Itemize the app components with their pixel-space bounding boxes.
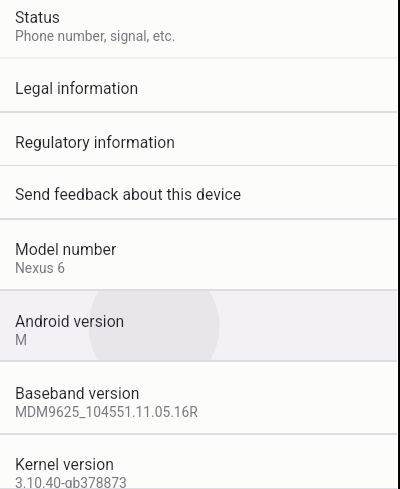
staticText: Model number — [15, 240, 117, 258]
staticText: 3.10.40-gb378873 — [15, 475, 127, 489]
button[interactable]: Legal information — [0, 59, 400, 113]
button[interactable]: Android version — [0, 291, 400, 362]
staticText: Regulatory information — [15, 133, 175, 151]
staticText: Nexus 6 — [15, 260, 65, 276]
staticText: Send feedback about this device — [15, 185, 242, 203]
staticText: Legal information — [15, 79, 139, 97]
button[interactable]: Regulatory information — [0, 113, 400, 167]
button[interactable]: Model number — [0, 220, 400, 291]
staticText: Android version — [15, 312, 125, 330]
staticText: Baseband version — [15, 384, 140, 402]
staticText: Kernel version — [15, 455, 114, 473]
button[interactable]: Baseband version — [0, 362, 400, 435]
staticText: Status — [15, 8, 60, 26]
button[interactable]: Kernel version — [0, 435, 400, 489]
button[interactable]: Status — [0, 0, 400, 59]
staticText: M — [15, 332, 28, 348]
button[interactable]: Send feedback about this device — [0, 166, 400, 220]
other: About phone — [0, 0, 400, 489]
staticText: MDM9625_104551.11.05.16R — [15, 404, 198, 420]
staticText: Phone number, signal, etc. — [15, 28, 176, 44]
